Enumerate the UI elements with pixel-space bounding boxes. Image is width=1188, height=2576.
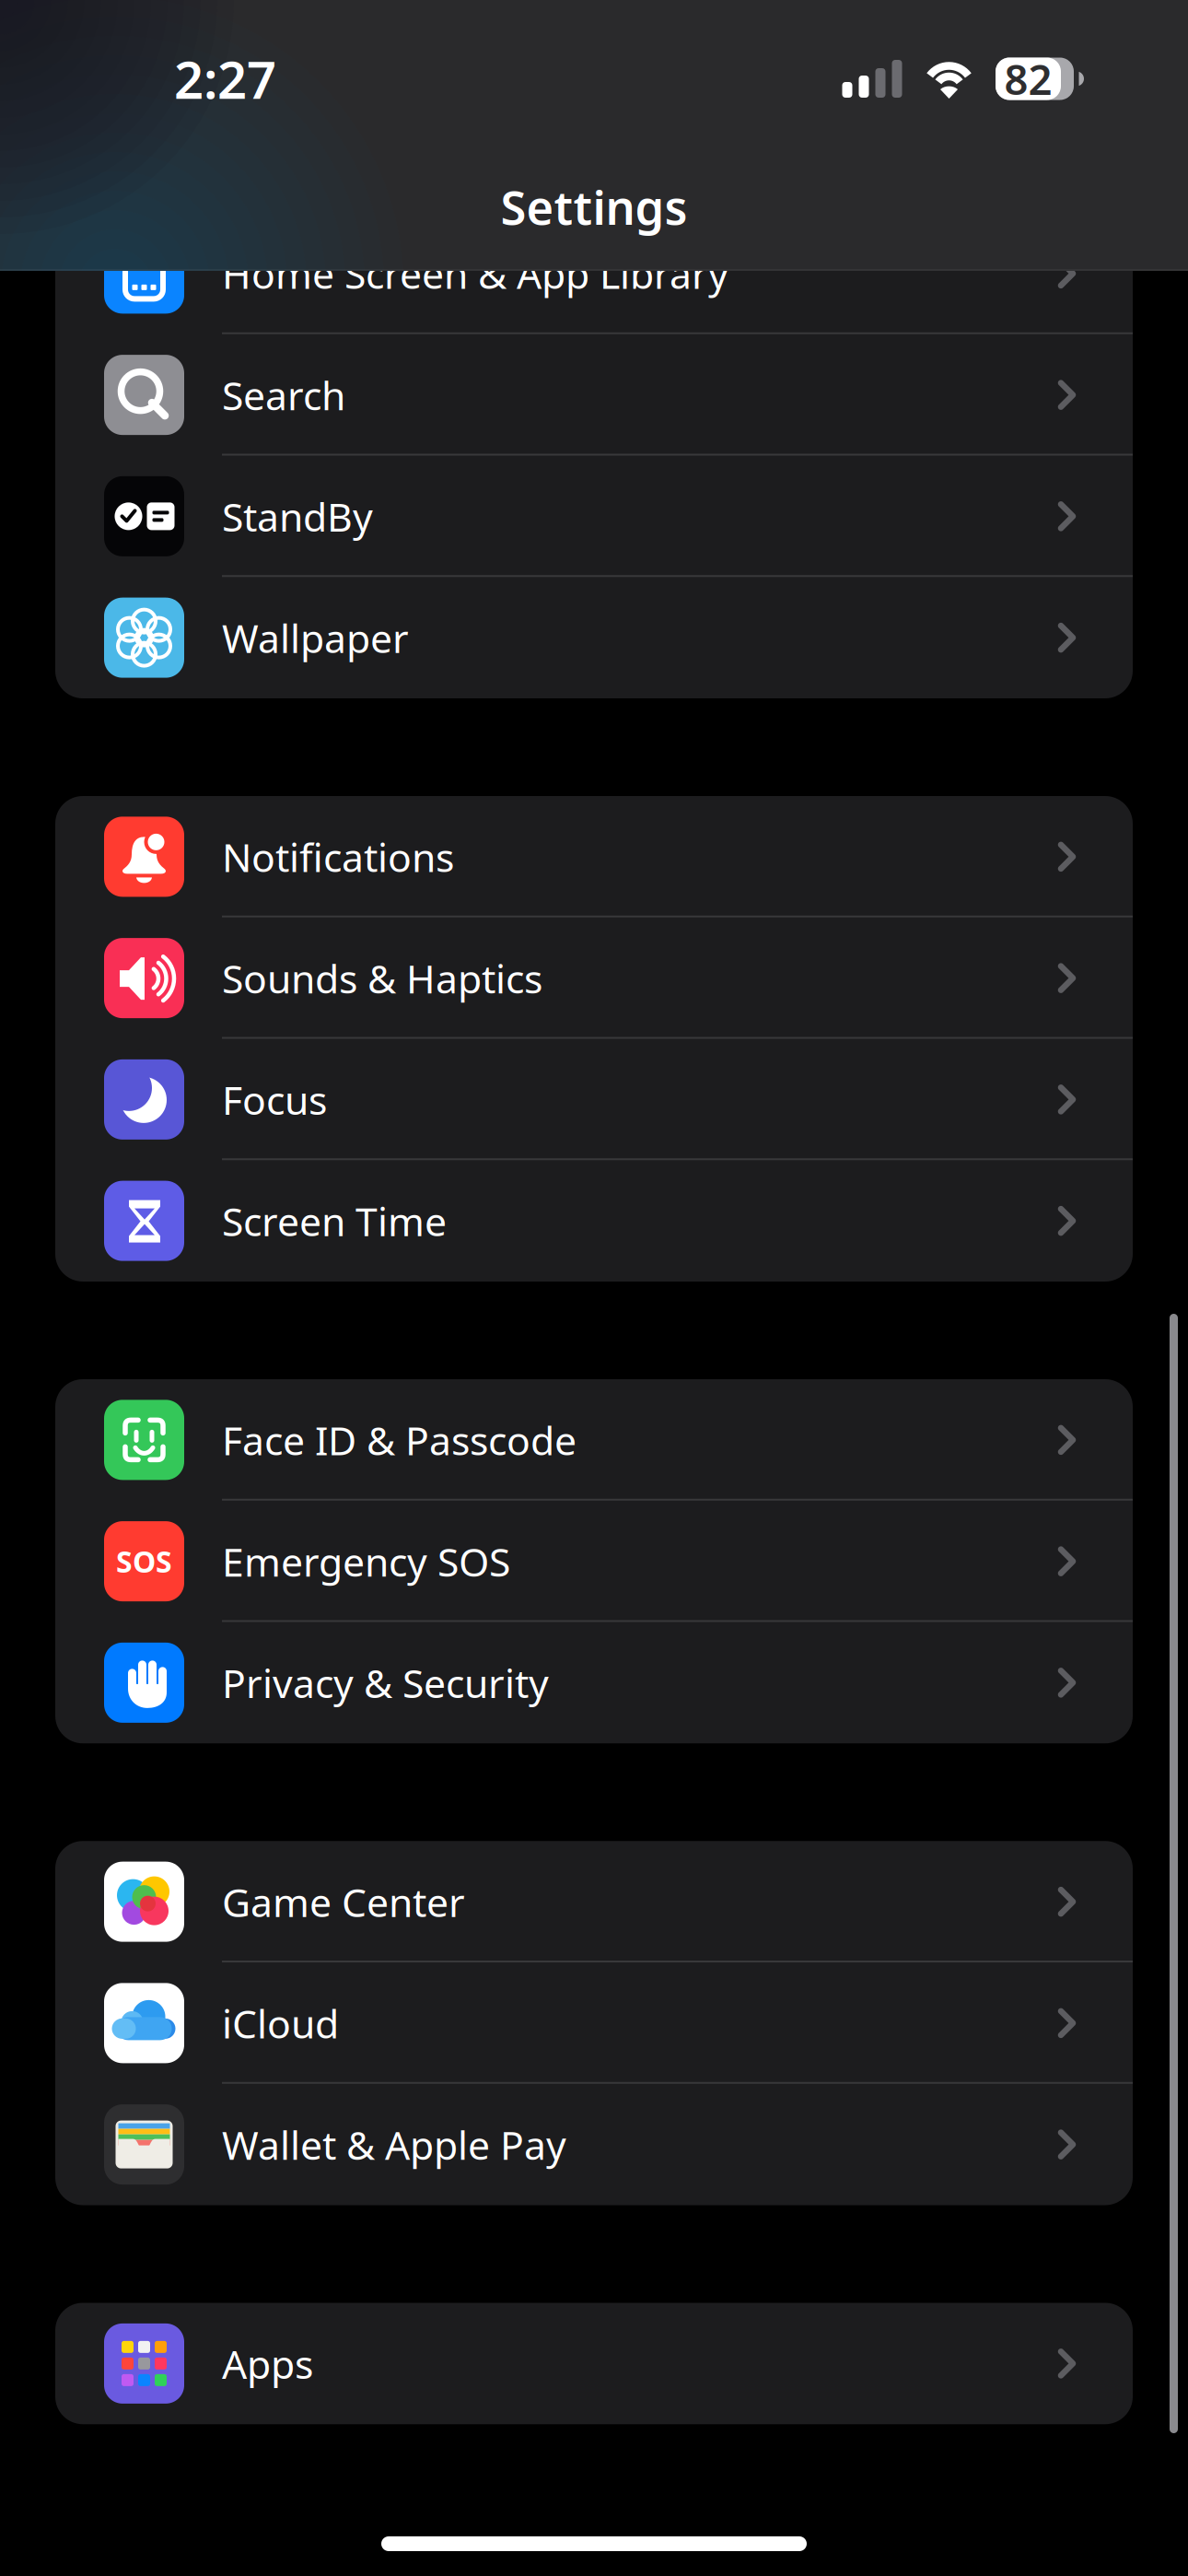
button[interactable]: Privacy & Security xyxy=(55,1622,1133,1743)
staticText: 2:27 xyxy=(174,44,276,113)
staticText: StandBy xyxy=(222,490,373,542)
button[interactable]: Screen Time xyxy=(55,1160,1133,1282)
staticText: Notifications xyxy=(222,831,454,883)
staticText: 82 xyxy=(1004,51,1052,107)
button[interactable]: Focus xyxy=(55,1039,1133,1160)
button[interactable]: SOS xyxy=(55,1501,1133,1622)
staticText: Wallpaper xyxy=(222,612,409,664)
button[interactable]: StandBy xyxy=(55,456,1133,577)
button[interactable]: Home Screen & App Library xyxy=(55,213,1133,334)
button[interactable]: Sounds & Haptics xyxy=(55,917,1133,1039)
staticText: iCloud xyxy=(222,1997,339,2049)
staticText: SOS xyxy=(116,1542,172,1581)
button[interactable]: Search xyxy=(55,334,1133,456)
button[interactable]: Face ID & Passcode xyxy=(55,1379,1133,1501)
staticText: Apps xyxy=(222,2337,313,2390)
staticText: Search xyxy=(222,369,345,421)
button[interactable]: iCloud xyxy=(55,1962,1133,2084)
button[interactable]: Wallpaper xyxy=(55,577,1133,698)
staticText: Home Screen & App Library xyxy=(222,247,728,300)
staticText: Sounds & Haptics xyxy=(222,952,542,1004)
staticText: Wallet & Apple Pay xyxy=(222,2118,566,2171)
button[interactable]: Wallet & Apple Pay xyxy=(55,2084,1133,2205)
button[interactable]: Apps xyxy=(55,2303,1133,2424)
staticText: Face ID & Passcode xyxy=(222,1414,577,1466)
staticText: Screen Time xyxy=(222,1195,447,1247)
button[interactable]: Game Center xyxy=(55,1841,1133,1962)
staticText: Settings xyxy=(501,176,687,238)
staticText: Privacy & Security xyxy=(222,1657,549,1709)
staticText: Focus xyxy=(222,1073,327,1126)
button[interactable]: Notifications xyxy=(55,796,1133,917)
staticText: Game Center xyxy=(222,1876,465,1928)
staticText: Emergency SOS xyxy=(222,1535,510,1587)
